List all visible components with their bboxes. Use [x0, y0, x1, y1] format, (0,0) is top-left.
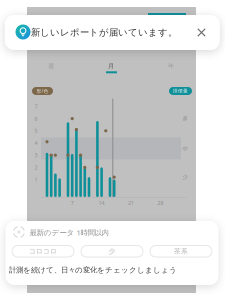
- staticText: 多: [182, 115, 188, 122]
- button[interactable]: コロコロ: [12, 246, 74, 257]
- staticText: 計測を続けて、日々の変化をチェックしましょう: [9, 265, 177, 275]
- staticText: 21: [128, 199, 134, 207]
- staticText: 週: [48, 62, 54, 70]
- staticText: 28: [157, 199, 163, 207]
- staticText: 4: [34, 139, 37, 147]
- staticText: 形/色: [36, 88, 48, 94]
- staticText: 14: [99, 199, 105, 207]
- staticText: 少: [108, 247, 115, 255]
- staticText: 7: [34, 103, 37, 110]
- staticText: 最新のデータ 1時間以内: [29, 227, 108, 238]
- staticText: 2: [34, 164, 37, 171]
- button[interactable]: 少: [81, 246, 143, 257]
- staticText: 月: [108, 62, 114, 70]
- staticText: 7: [71, 199, 74, 207]
- staticText: 少: [182, 173, 188, 181]
- staticText: 排便量: [173, 88, 188, 94]
- staticText: 茶系: [174, 247, 188, 255]
- staticText: 新しいレポートが届いています。: [31, 27, 177, 38]
- button[interactable]: 茶系: [150, 246, 212, 257]
- staticText: 3: [34, 152, 37, 159]
- staticText: 6: [34, 115, 37, 122]
- staticText: 中: [182, 145, 188, 153]
- button[interactable]: 閉じる: [190, 21, 212, 43]
- staticText: 5: [34, 127, 37, 134]
- staticText: コロコロ: [29, 247, 57, 255]
- staticText: 年: [168, 62, 174, 70]
- staticText: 1: [34, 176, 37, 183]
